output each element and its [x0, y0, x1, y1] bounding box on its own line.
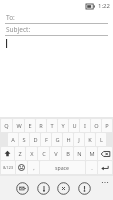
staticText: .	[91, 164, 93, 172]
button[interactable]: Send	[16, 182, 29, 195]
staticText: I	[84, 122, 86, 130]
button[interactable]: V	[50, 147, 61, 160]
staticText: C	[42, 150, 46, 158]
button[interactable]: F	[41, 133, 51, 146]
button[interactable]: G	[52, 133, 62, 146]
staticText: K	[88, 136, 92, 144]
staticText: ,	[33, 164, 35, 172]
staticText: X	[30, 150, 34, 158]
staticText: F	[45, 136, 48, 144]
button[interactable]: Numbers and symbols	[1, 161, 15, 174]
button[interactable]: T	[47, 119, 57, 132]
button[interactable]: To:	[0, 12, 113, 24]
button[interactable]: More options	[100, 178, 110, 186]
button[interactable]: R	[36, 119, 46, 132]
staticText: V	[54, 150, 58, 158]
staticText: D	[33, 136, 38, 144]
staticText: U	[72, 122, 77, 130]
staticText: space	[55, 164, 70, 171]
button[interactable]: W	[13, 119, 24, 132]
button[interactable]: S	[19, 133, 29, 146]
staticText: Q	[4, 122, 9, 130]
button[interactable]: J	[74, 133, 84, 146]
button[interactable]: Subject:	[0, 24, 113, 36]
staticText: R	[39, 122, 43, 130]
button[interactable]: Y	[58, 119, 68, 132]
button[interactable]: Attach	[37, 182, 50, 195]
button[interactable]: A	[8, 133, 18, 146]
staticText: J	[78, 136, 80, 144]
staticText: S	[22, 136, 26, 144]
staticText: W	[16, 122, 22, 130]
staticText: Subject:	[6, 25, 31, 34]
staticText: O	[94, 122, 99, 130]
button[interactable]: M	[86, 147, 97, 160]
staticText: 1:22	[98, 2, 110, 10]
button[interactable]: P	[102, 119, 112, 132]
staticText: Z	[18, 150, 22, 158]
button[interactable]: Shift	[1, 147, 14, 160]
button[interactable]: Q	[1, 119, 12, 132]
button[interactable]: U	[69, 119, 79, 132]
staticText: A	[11, 136, 15, 144]
button[interactable]: Priority	[78, 182, 91, 195]
staticText: &123	[3, 165, 14, 171]
staticText: G	[55, 136, 60, 144]
button[interactable]: Backspace	[98, 147, 112, 160]
button[interactable]: ,	[28, 161, 39, 174]
button[interactable]: K	[85, 133, 95, 146]
staticText: E	[28, 122, 32, 130]
button[interactable]: Enter	[98, 161, 112, 174]
button[interactable]: N	[74, 147, 85, 160]
button[interactable]: I	[80, 119, 90, 132]
button[interactable]	[0, 36, 113, 54]
staticText: M	[89, 150, 95, 158]
staticText: N	[77, 150, 82, 158]
staticText: L	[100, 136, 103, 144]
button[interactable]: Close	[57, 182, 70, 195]
staticText: H	[66, 136, 71, 144]
button[interactable]: D	[30, 133, 40, 146]
button[interactable]: E	[25, 119, 35, 132]
button[interactable]: H	[63, 133, 73, 146]
button[interactable]: B	[62, 147, 73, 160]
button[interactable]: Z	[15, 147, 25, 160]
staticText: B	[66, 150, 70, 158]
button[interactable]: O	[91, 119, 101, 132]
button[interactable]: Space	[40, 161, 85, 174]
staticText: P	[105, 122, 109, 130]
staticText: To:	[6, 13, 15, 22]
button[interactable]: C	[38, 147, 49, 160]
button[interactable]: X	[26, 147, 37, 160]
button[interactable]: .	[86, 161, 97, 174]
button[interactable]: Emoji	[16, 161, 27, 174]
staticText: Y	[61, 122, 65, 130]
staticText: T	[50, 122, 54, 130]
button[interactable]: L	[96, 133, 106, 146]
